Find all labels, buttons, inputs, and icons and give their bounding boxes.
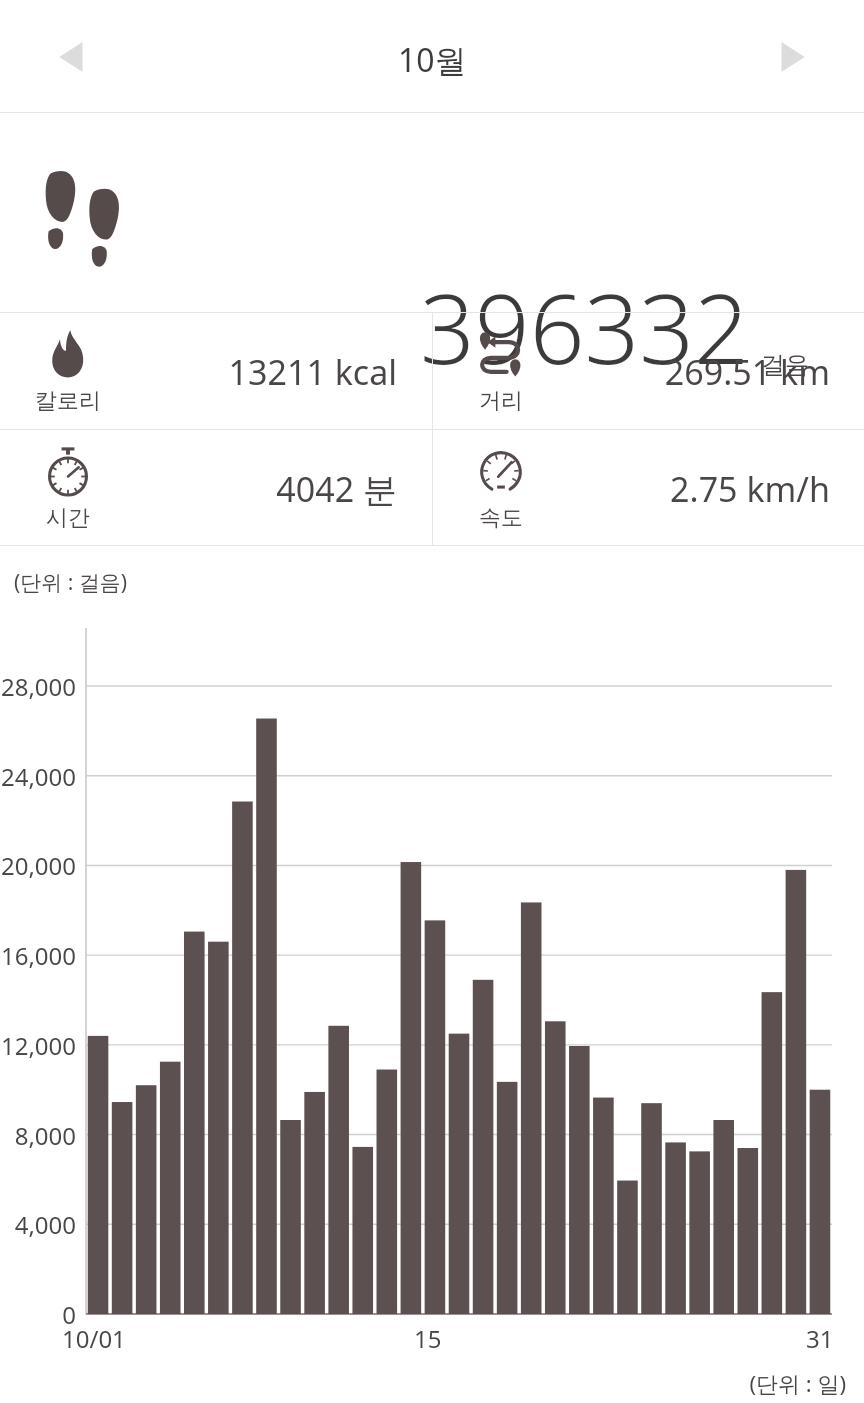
staticText: 4,000 xyxy=(0,1208,76,1241)
staticText: 거리 xyxy=(479,387,523,415)
staticText: 2.75 km/h xyxy=(433,466,830,512)
staticText: 4042 분 xyxy=(0,466,397,512)
staticText: (단위 : 일) xyxy=(0,1368,846,1398)
staticText: 0 xyxy=(0,1298,76,1331)
staticText: 10월 xyxy=(398,38,467,82)
button[interactable]: 속도 xyxy=(433,430,864,545)
staticText: 16,000 xyxy=(0,939,76,972)
staticText: 속도 xyxy=(479,504,523,532)
button[interactable]: 다음 달 xyxy=(758,24,824,90)
staticText: 28,000 xyxy=(0,670,76,703)
staticText: 15 xyxy=(414,1322,442,1355)
staticText: 20,000 xyxy=(0,849,76,882)
button[interactable]: 이전 달 xyxy=(40,24,106,90)
button[interactable]: 거리 xyxy=(433,313,864,428)
staticText: 396332 xyxy=(420,261,749,392)
staticText: 시간 xyxy=(46,504,90,532)
staticText: (단위 : 걸음) xyxy=(14,568,128,597)
staticText: 8,000 xyxy=(0,1119,76,1152)
staticText: 12,000 xyxy=(0,1029,76,1062)
staticText: 칼로리 xyxy=(35,387,101,415)
button[interactable]: 칼로리 xyxy=(0,313,431,428)
staticText: 269.51 km xyxy=(433,349,830,395)
staticText: 10/01 xyxy=(62,1322,126,1355)
staticText: 13211 kcal xyxy=(0,349,397,395)
staticText: 31 xyxy=(806,1322,834,1355)
staticText: 걸음 xyxy=(761,350,809,380)
staticText: 24,000 xyxy=(0,760,76,793)
button[interactable]: 396332 xyxy=(0,113,864,312)
button[interactable]: 시간 xyxy=(0,430,431,545)
